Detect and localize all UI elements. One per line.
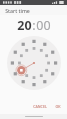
staticText: OK [55,104,61,109]
button[interactable]: Clock face hour selector [7,36,61,90]
button[interactable]: 00 [36,17,51,34]
staticText: : [32,17,36,34]
staticText: CANCEL [33,104,47,109]
staticText: 20 [17,17,32,34]
staticText: 00 [36,17,51,34]
button[interactable]: CANCEL [30,102,50,111]
button[interactable]: 20 [17,17,32,34]
button[interactable]: OK [52,102,64,111]
staticText: Start time [5,7,30,14]
